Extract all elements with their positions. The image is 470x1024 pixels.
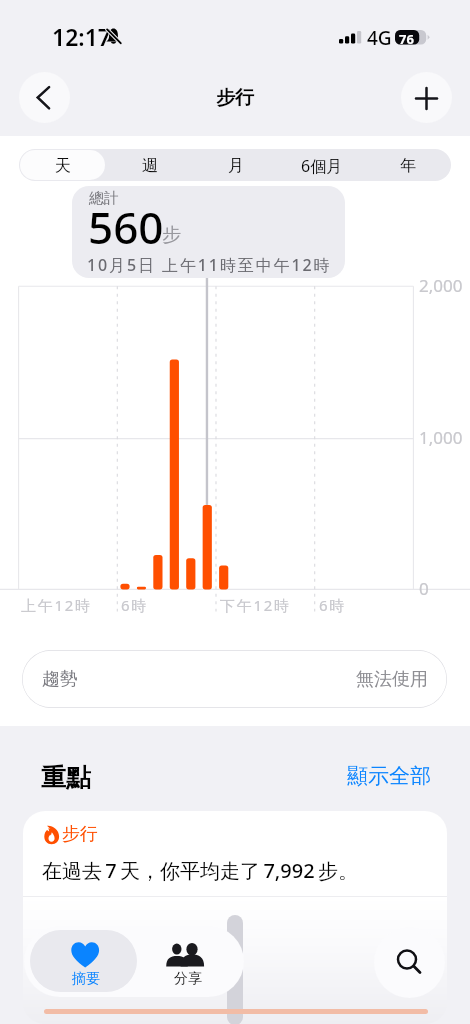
staticText: 分享 (174, 970, 202, 988)
button[interactable]: 天 (19, 149, 106, 181)
staticText: 摘要 (72, 970, 100, 988)
button[interactable]: 步行 (23, 811, 447, 1024)
button[interactable]: 顯示全部 (347, 763, 431, 789)
staticText: 6時 (319, 595, 346, 615)
staticText: 總計 (89, 189, 119, 208)
staticText: 10月5日 上午11時至中午12時 (87, 254, 332, 276)
staticText: 4G (367, 25, 392, 51)
button[interactable]: Add data (401, 72, 452, 123)
button[interactable]: 年 (365, 149, 451, 181)
staticText: 重點 (41, 762, 91, 793)
staticText: 0 (419, 577, 429, 600)
staticText: 1,000 (419, 426, 463, 449)
button[interactable]: Search (374, 927, 445, 998)
staticText: 週 (142, 156, 158, 176)
staticText: 年 (400, 156, 416, 176)
staticText: 步 (162, 223, 181, 247)
staticText: 天 (55, 156, 71, 176)
staticText: 月 (228, 156, 244, 176)
staticText: 趨勢 (42, 668, 78, 691)
button[interactable] (30, 930, 137, 992)
button[interactable]: 月 (193, 149, 279, 181)
staticText: 步行 (216, 86, 254, 110)
button[interactable] (137, 930, 239, 992)
button[interactable]: 6個月 (279, 149, 365, 181)
staticText: 顯示全部 (347, 763, 431, 789)
staticText: 步行 (62, 823, 98, 846)
staticText: 在過去 7 天，你平均走了 7,992 步。 (42, 857, 358, 884)
staticText: 6個月 (301, 155, 343, 177)
button[interactable]: Back (19, 72, 70, 123)
staticText: 2,000 (419, 274, 463, 297)
staticText: 12:17 (52, 21, 111, 52)
staticText: 無法使用 (356, 668, 428, 691)
staticText: 上午12時 (21, 595, 92, 615)
staticText: 560 (88, 197, 164, 257)
button[interactable]: 趨勢 (22, 650, 447, 708)
staticText: 76 (399, 30, 414, 46)
button[interactable]: 週 (106, 149, 193, 181)
staticText: 6時 (121, 595, 148, 615)
staticText: 下午12時 (220, 595, 291, 615)
